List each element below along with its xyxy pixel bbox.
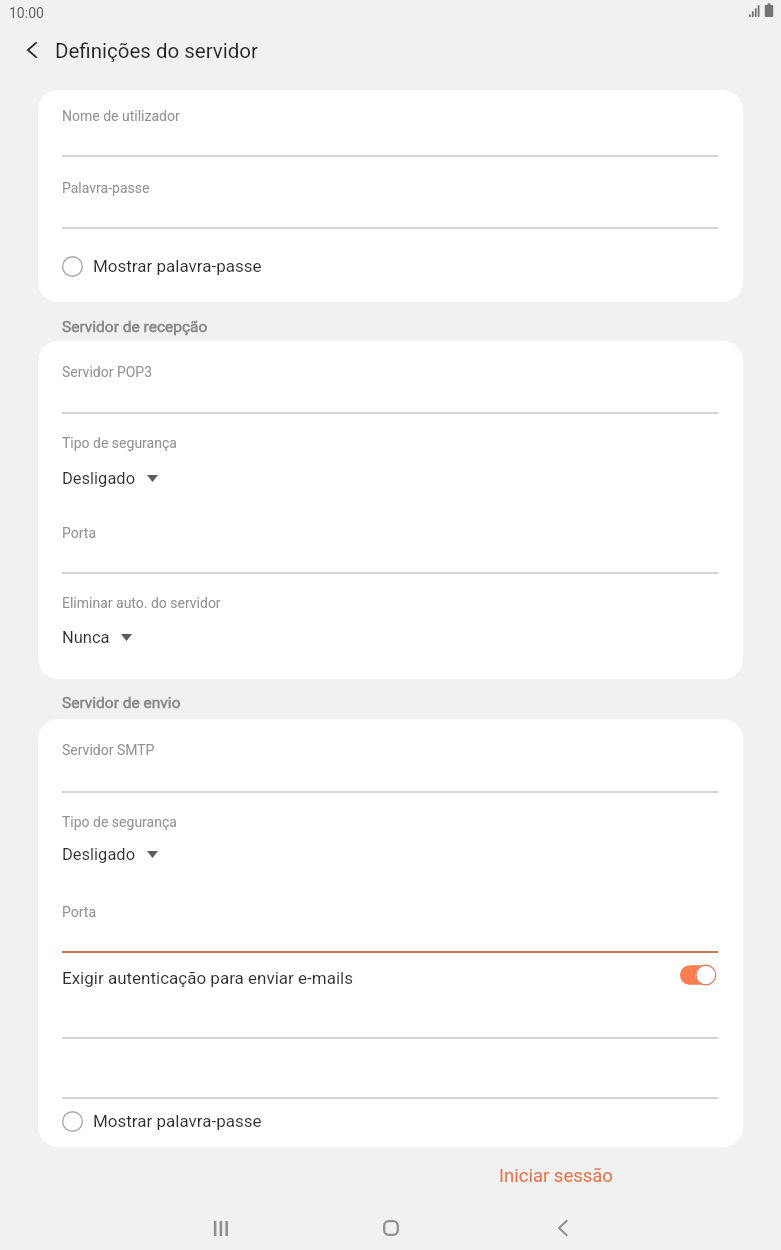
button[interactable]: Recents (192, 1206, 248, 1250)
staticText: Mostrar palavra-passe (93, 1111, 262, 1131)
staticText: Servidor SMTP (62, 742, 155, 758)
button[interactable]: Desligado (62, 461, 158, 495)
button[interactable]: Desligado (62, 837, 158, 871)
button[interactable] (62, 729, 718, 794)
staticText: Exigir autenticação para enviar e-mails (62, 968, 353, 988)
button[interactable] (62, 891, 718, 954)
staticText: Servidor de recepção (62, 318, 208, 336)
button[interactable]: Mostrar palavra-passe (62, 1101, 262, 1141)
staticText: Porta (62, 525, 97, 541)
button[interactable]: Back (8, 26, 56, 74)
button[interactable]: Home (363, 1206, 419, 1250)
button[interactable] (62, 95, 718, 158)
staticText: Porta (62, 904, 97, 920)
staticText: Eliminar auto. do servidor (62, 595, 221, 611)
button[interactable]: Exigir autenticação para enviar e-mails (62, 954, 720, 1002)
staticText: Servidor de envio (62, 694, 181, 712)
staticText: Nunca (62, 628, 110, 647)
button[interactable]: Iniciar sessão (499, 1165, 613, 1187)
staticText: 10:00 (9, 5, 44, 21)
button[interactable]: Exigir autenticação para enviar e-mails (675, 959, 721, 991)
button[interactable]: Mostrar palavra-passe (62, 246, 262, 286)
staticText: Mostrar palavra-passe (93, 256, 262, 276)
staticText: Definições do servidor (55, 39, 258, 63)
staticText: Tipo de segurança (62, 435, 177, 451)
button[interactable]: Nunca (62, 620, 132, 654)
button[interactable] (62, 167, 718, 230)
staticText: Servidor POP3 (62, 364, 153, 380)
button[interactable]: Back (535, 1206, 591, 1250)
staticText: Desligado (62, 469, 136, 488)
button[interactable] (62, 351, 718, 415)
staticText: Palavra-passe (62, 180, 150, 196)
staticText: Nome de utilizador (62, 108, 180, 124)
staticText: Desligado (62, 845, 136, 864)
button[interactable] (62, 512, 718, 575)
staticText: Tipo de segurança (62, 814, 177, 830)
